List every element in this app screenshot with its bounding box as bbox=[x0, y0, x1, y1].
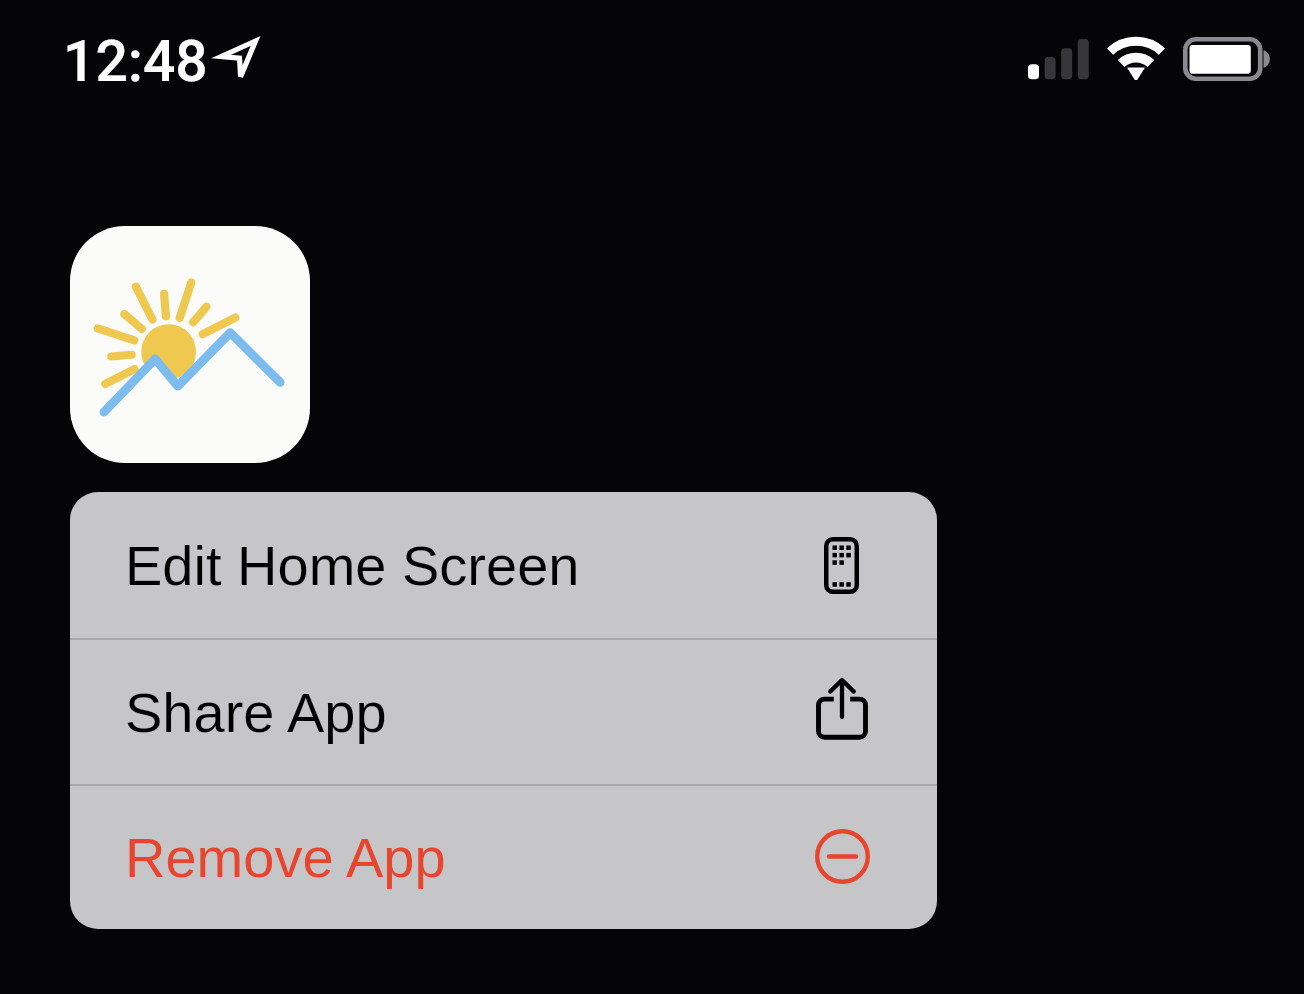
staticText: 12:48 bbox=[63, 28, 208, 95]
button[interactable]: Remove App bbox=[70, 786, 937, 929]
other: Location active bbox=[216, 35, 264, 83]
staticText: Remove App bbox=[125, 826, 446, 889]
button[interactable]: Share App bbox=[70, 640, 937, 784]
button[interactable]: Edit Home Screen bbox=[70, 492, 937, 638]
button[interactable]: Weather app bbox=[70, 226, 310, 463]
staticText: Share App bbox=[125, 681, 387, 744]
staticText: Edit Home Screen bbox=[125, 534, 580, 597]
